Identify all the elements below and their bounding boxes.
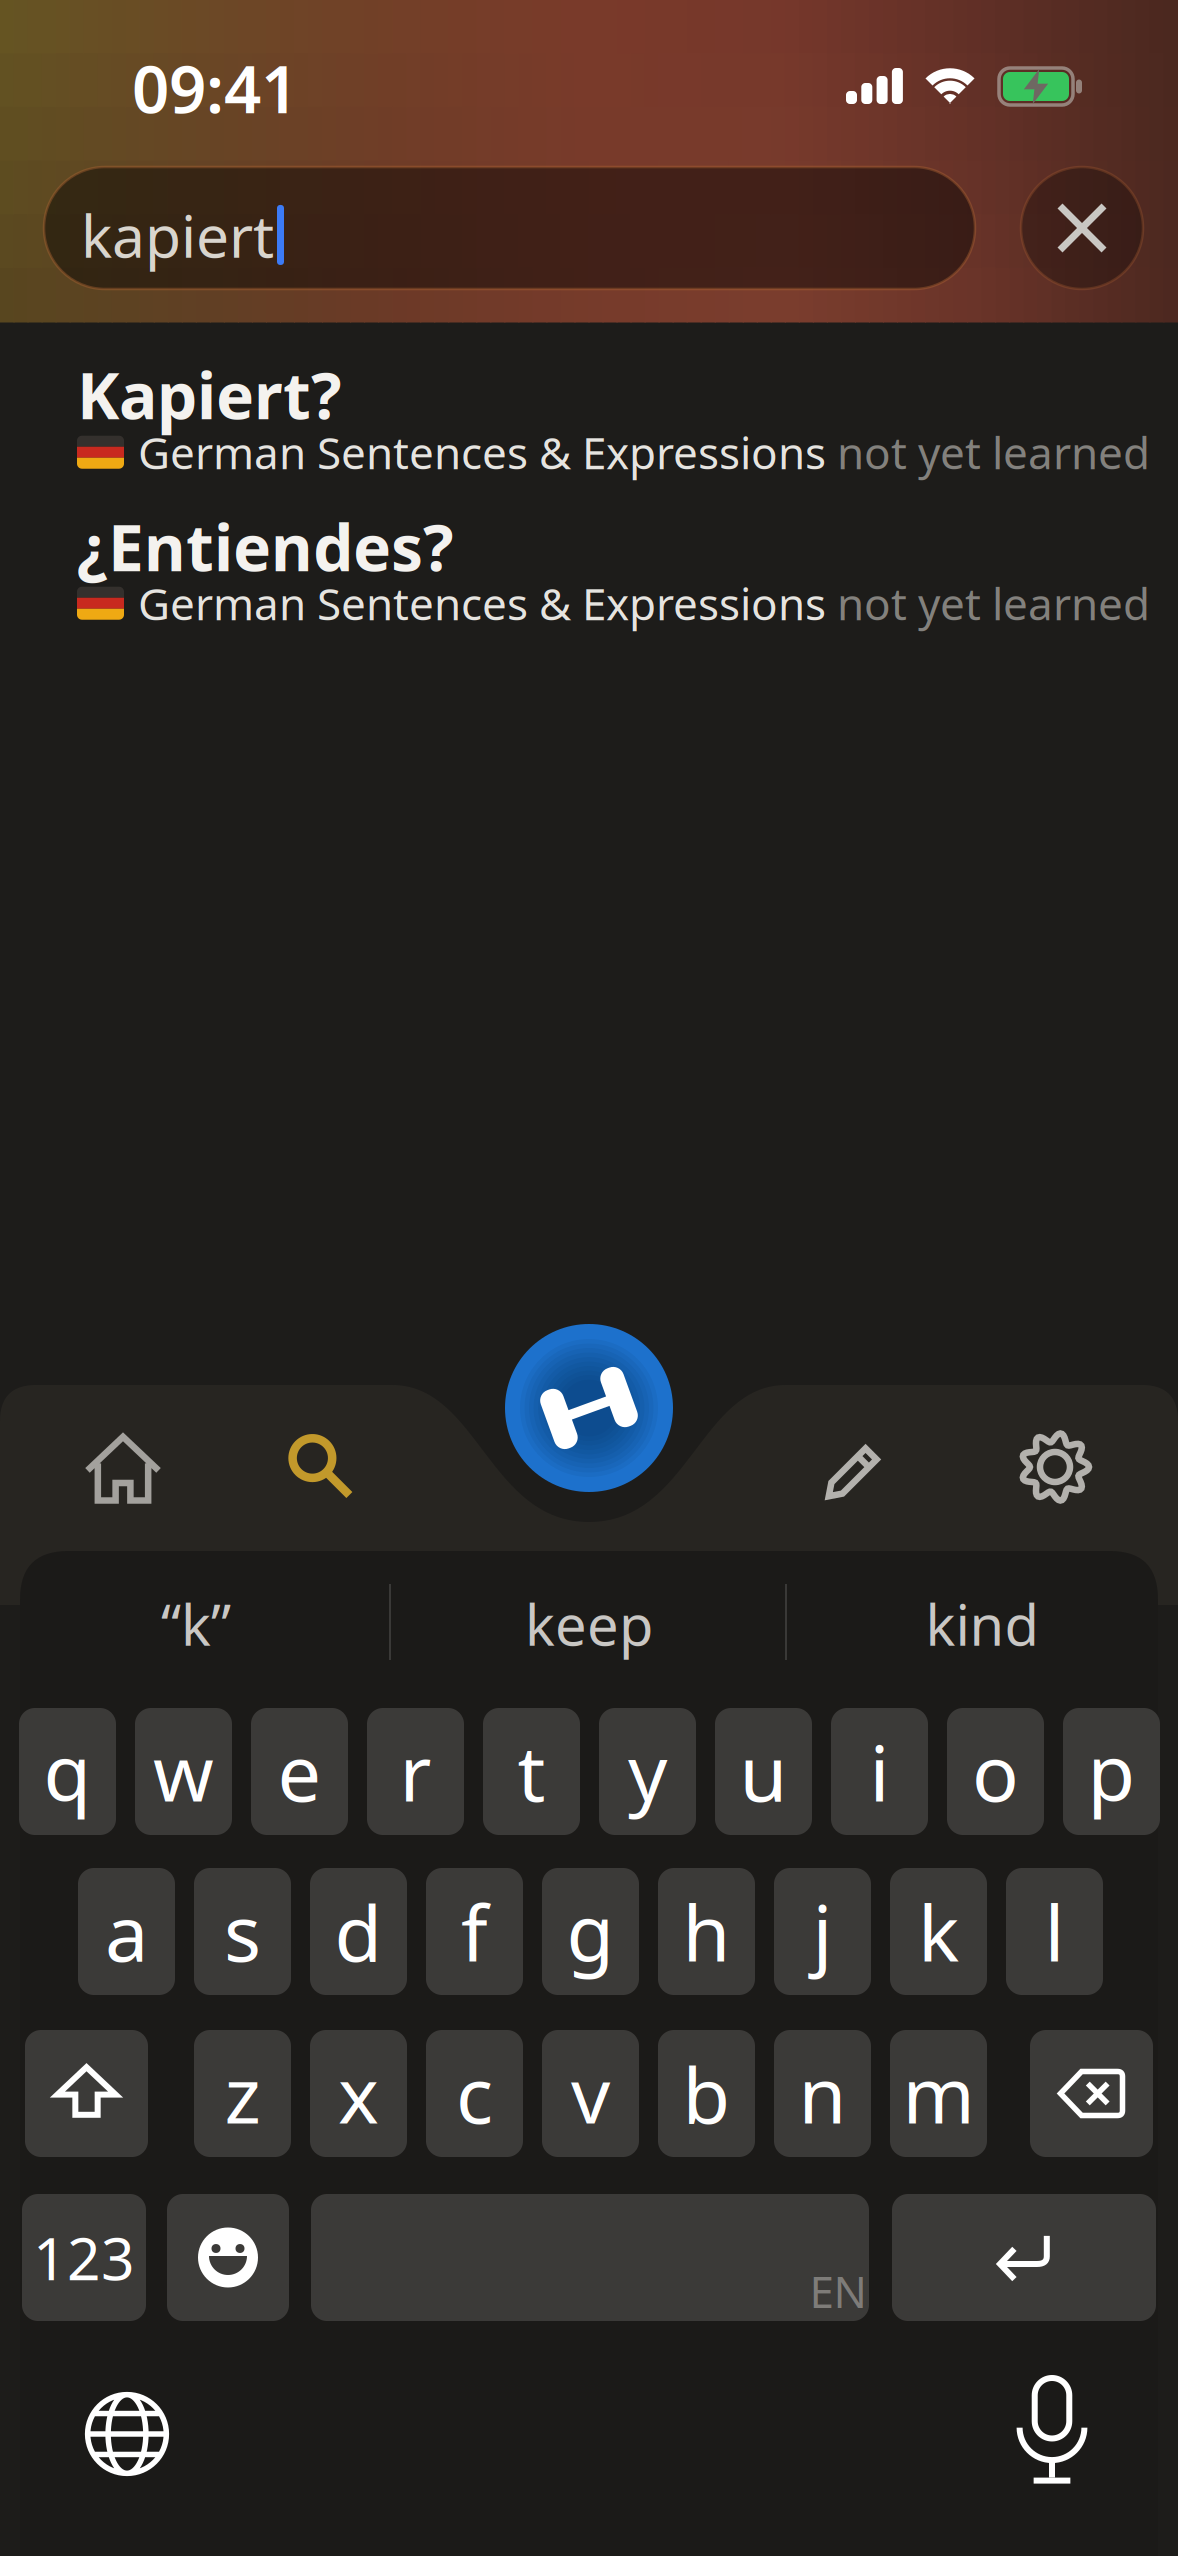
staticText: z (224, 2042, 260, 2145)
button[interactable]: i (831, 1708, 928, 1835)
button[interactable]: e (251, 1708, 348, 1835)
button[interactable]: Return (892, 2194, 1156, 2321)
button[interactable]: c (426, 2030, 523, 2157)
button[interactable]: t (483, 1708, 580, 1835)
staticText: f (461, 1880, 488, 1983)
staticText: ¿Entiendes? (77, 504, 454, 589)
staticText: q (43, 1720, 91, 1823)
staticText: j (812, 1880, 832, 1983)
staticText: Kapiert? (77, 352, 342, 437)
button[interactable]: w (135, 1708, 232, 1835)
staticText: u (739, 1720, 787, 1823)
button[interactable]: Home (56, 1404, 190, 1534)
staticText: h (682, 1880, 730, 1983)
button[interactable]: Search (256, 1403, 382, 1529)
button[interactable]: q (19, 1708, 116, 1835)
button[interactable]: keep (485, 1573, 693, 1675)
button[interactable]: s (194, 1868, 291, 1995)
staticText: s (224, 1880, 261, 1983)
button[interactable]: Settings (991, 1403, 1119, 1531)
staticText: v (571, 2042, 610, 2145)
staticText: r (399, 1720, 431, 1823)
button[interactable]: m (890, 2030, 987, 2157)
staticText: w (153, 1720, 214, 1823)
staticText: EN (809, 2262, 866, 2320)
button[interactable]: u (715, 1708, 812, 1835)
button[interactable]: Space (311, 2194, 869, 2321)
button[interactable]: v (542, 2030, 639, 2157)
button[interactable]: p (1063, 1708, 1160, 1835)
button[interactable]: Delete (1030, 2030, 1153, 2157)
staticText: b (682, 2042, 730, 2145)
button[interactable]: Edit (794, 1403, 922, 1531)
button[interactable]: Dictation (997, 2354, 1107, 2510)
button[interactable]: x (310, 2030, 407, 2157)
staticText: y (628, 1720, 667, 1823)
staticText: keep (525, 1587, 653, 1661)
staticText: 123 (33, 2218, 135, 2296)
staticText: kind (925, 1587, 1038, 1661)
staticText: d (334, 1880, 382, 1983)
staticText: not yet learned (837, 423, 1150, 481)
button[interactable]: Next keyboard (62, 2369, 192, 2499)
button[interactable]: kind (885, 1573, 1078, 1675)
button[interactable]: Clear search (1021, 167, 1143, 289)
button[interactable]: “k” (121, 1573, 271, 1675)
staticText: m (902, 2042, 974, 2145)
staticText: German Sentences & Expressions (138, 423, 837, 481)
button[interactable]: Emoji (167, 2194, 289, 2321)
button[interactable]: o (947, 1708, 1044, 1835)
staticText: p (1087, 1720, 1135, 1823)
button[interactable]: j (774, 1868, 871, 1995)
button[interactable]: h (658, 1868, 755, 1995)
button[interactable]: 123 (22, 2194, 146, 2321)
button[interactable]: a (78, 1868, 175, 1995)
button[interactable]: b (658, 2030, 755, 2157)
staticText: l (1044, 1880, 1064, 1983)
button[interactable]: z (194, 2030, 291, 2157)
staticText: e (277, 1720, 321, 1823)
button[interactable]: d (310, 1868, 407, 1995)
staticText: “k” (161, 1587, 231, 1661)
button[interactable]: Shift (25, 2030, 148, 2157)
staticText: c (456, 2042, 493, 2145)
staticText: kapiert (81, 196, 274, 274)
staticText: t (517, 1720, 545, 1823)
button[interactable]: g (542, 1868, 639, 1995)
button[interactable]: n (774, 2030, 871, 2157)
staticText: o (972, 1720, 1019, 1823)
staticText: not yet learned (837, 574, 1150, 632)
staticText: i (869, 1720, 889, 1823)
button[interactable]: r (367, 1708, 464, 1835)
staticText: German Sentences & Expressions (138, 574, 837, 632)
staticText: 09:41 (132, 45, 298, 131)
button[interactable]: l (1006, 1868, 1103, 1995)
button[interactable]: k (890, 1868, 987, 1995)
button[interactable]: Practice (505, 1324, 673, 1492)
staticText: a (105, 1880, 148, 1983)
staticText: n (798, 2042, 846, 2145)
staticText: x (338, 2042, 379, 2145)
button[interactable]: y (599, 1708, 696, 1835)
staticText: k (918, 1880, 959, 1983)
staticText: g (566, 1880, 614, 1983)
button[interactable]: f (426, 1868, 523, 1995)
